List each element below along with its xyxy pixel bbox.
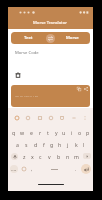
button[interactable]: Period — [73, 166, 79, 172]
button[interactable]: s — [22, 138, 31, 150]
button[interactable]: y — [52, 126, 60, 138]
button[interactable]: Keyboard assistant — [13, 114, 20, 121]
button[interactable]: w — [18, 126, 27, 138]
staticText: b — [57, 153, 61, 160]
staticText: m — [74, 153, 79, 160]
staticText: j — [67, 141, 69, 148]
button[interactable]: f — [40, 138, 48, 150]
button[interactable]: Clipboard — [58, 114, 65, 121]
staticText: s — [25, 141, 28, 148]
button[interactable]: Sticker — [47, 114, 54, 121]
button[interactable]: GIF — [36, 114, 43, 121]
staticText: Text — [24, 35, 33, 41]
staticText: p — [86, 129, 90, 136]
staticText: v — [48, 153, 51, 160]
staticText: a — [16, 141, 19, 148]
button[interactable]: z — [20, 150, 28, 162]
button[interactable]: More options — [81, 114, 88, 121]
button[interactable]: Backspace — [81, 150, 93, 162]
button[interactable]: o — [76, 126, 84, 138]
button[interactable]: u — [60, 126, 68, 138]
button[interactable]: t — [44, 126, 52, 138]
button[interactable]: n — [63, 150, 72, 162]
button[interactable]: e — [27, 126, 36, 138]
staticText: ?123 — [11, 168, 17, 171]
button[interactable]: Copy — [76, 86, 81, 91]
button[interactable]: Text — [11, 32, 46, 44]
button[interactable]: Share — [83, 86, 88, 91]
button[interactable]: Shift — [8, 150, 20, 162]
button[interactable]: Morse Code — [11, 46, 90, 81]
staticText: l — [83, 141, 85, 148]
button[interactable]: .--. .-. . ...- .. . .-- — [11, 85, 90, 107]
staticText: . — [75, 166, 77, 172]
button[interactable]: i — [68, 126, 76, 138]
button[interactable]: Enter — [81, 164, 91, 174]
staticText: o — [78, 129, 82, 136]
staticText: n — [66, 153, 70, 160]
staticText: Morse — [66, 35, 79, 41]
button[interactable]: x — [28, 150, 36, 162]
button[interactable]: Space — [35, 166, 73, 173]
button[interactable]: Morse — [55, 32, 90, 44]
staticText: h — [58, 141, 62, 148]
button[interactable]: Symbols — [10, 165, 18, 173]
staticText: f — [43, 141, 45, 148]
button[interactable]: Swap languages — [46, 34, 55, 43]
staticText: w — [20, 129, 25, 136]
button[interactable]: v — [45, 150, 54, 162]
button[interactable]: k — [72, 138, 80, 150]
button[interactable]: a — [13, 138, 22, 150]
staticText: g — [50, 141, 54, 148]
staticText: Morse Translator — [33, 20, 68, 26]
button[interactable]: r — [36, 126, 44, 138]
staticText: u — [62, 129, 66, 136]
button[interactable]: j — [64, 138, 72, 150]
staticText: c — [39, 153, 42, 160]
button[interactable]: Clear text — [14, 71, 21, 78]
button[interactable]: q — [9, 126, 18, 138]
button[interactable]: h — [56, 138, 64, 150]
button[interactable]: l — [80, 138, 88, 150]
staticText: t — [47, 129, 49, 136]
button[interactable]: m — [72, 150, 81, 162]
staticText: y — [55, 129, 58, 136]
staticText: r — [39, 129, 42, 136]
button[interactable]: b — [54, 150, 63, 162]
staticText: d — [34, 141, 38, 148]
button[interactable]: Emoji — [21, 166, 27, 172]
button[interactable]: Comma — [29, 166, 35, 172]
staticText: e — [30, 129, 33, 136]
button[interactable]: c — [36, 150, 45, 162]
button[interactable]: d — [31, 138, 40, 150]
staticText: k — [75, 141, 78, 148]
button[interactable]: p — [84, 126, 92, 138]
staticText: Morse Code — [15, 50, 39, 56]
staticText: , — [31, 166, 33, 172]
staticText: z — [23, 153, 26, 160]
staticText: .--. .-. . ...- .. . .-- — [15, 93, 38, 98]
staticText: i — [71, 129, 73, 136]
staticText: x — [31, 153, 34, 160]
button[interactable]: Themes — [24, 114, 31, 121]
staticText: q — [12, 129, 16, 136]
button[interactable]: g — [48, 138, 56, 150]
button[interactable]: Settings — [70, 114, 77, 121]
